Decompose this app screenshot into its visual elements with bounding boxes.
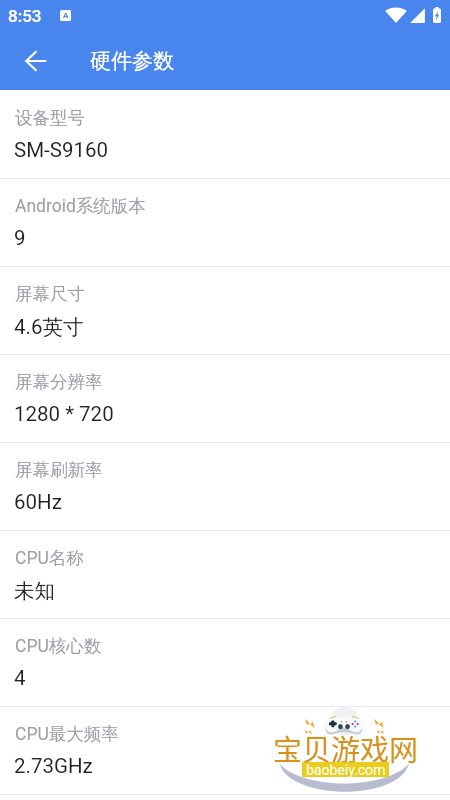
staticText: 1280 * 720 [14,402,114,426]
staticText: A [63,11,69,20]
staticText: 60Hz [14,490,62,514]
button[interactable]: Back [7,33,63,89]
staticText: 屏幕尺寸 [15,283,85,305]
button[interactable]: CPU名称 [0,530,450,618]
staticText: baobeiy.com [306,762,386,777]
staticText: 硬件参数 [90,48,174,74]
staticText: 未知 [14,578,55,604]
button[interactable]: 屏幕尺寸 [0,266,450,354]
staticText: 8:53 [8,6,42,26]
staticText: 9 [14,226,26,250]
button[interactable]: 屏幕刷新率 [0,442,450,530]
staticText: SM-S9160 [14,138,108,162]
button[interactable]: Android系统版本 [0,178,450,266]
button[interactable]: 屏幕分辨率 [0,354,450,442]
button[interactable]: CPU核心数 [0,618,450,706]
staticText: 4 [14,666,26,690]
button[interactable]: 设备型号 [0,90,450,178]
staticText: 2.73GHz [14,754,93,778]
staticText: 设备型号 [15,107,85,129]
button[interactable]: CPU最大频率 [0,706,450,794]
staticText: 屏幕刷新率 [15,459,103,481]
staticText: Android系统版本 [15,195,146,217]
staticText: CPU最大频率 [15,723,119,745]
staticText: 屏幕分辨率 [15,371,103,393]
staticText: 宝贝游戏网 [273,727,419,769]
staticText: CPU名称 [15,547,84,569]
staticText: CPU核心数 [15,635,102,657]
staticText: 4.6英寸 [14,314,84,340]
